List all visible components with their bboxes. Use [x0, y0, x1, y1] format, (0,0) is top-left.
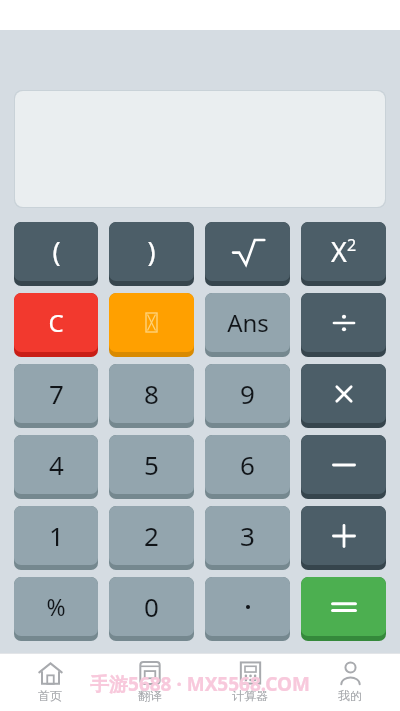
button[interactable]: Profile — [300, 653, 400, 711]
staticText: Ans — [227, 306, 269, 339]
button[interactable]: C — [14, 293, 98, 357]
button[interactable] — [301, 506, 386, 570]
button[interactable]: ) — [109, 222, 194, 286]
staticText: 4 — [49, 447, 64, 482]
staticText: 7 — [49, 376, 64, 411]
button[interactable] — [205, 577, 290, 641]
staticText: C — [48, 306, 64, 339]
button[interactable] — [301, 435, 386, 499]
button[interactable]: % — [14, 577, 98, 641]
button[interactable]: Home — [0, 653, 100, 711]
staticText: 手游5688 · MX5568.COM — [90, 671, 310, 697]
staticText: 1 — [49, 518, 64, 553]
staticText: 6 — [240, 447, 255, 482]
button[interactable]: Ans — [205, 293, 290, 357]
staticText: 首页 — [38, 688, 62, 703]
button[interactable]: 9 — [205, 364, 290, 428]
button[interactable] — [109, 293, 194, 357]
staticText: 我的 — [338, 688, 362, 703]
button[interactable]: ( — [14, 222, 98, 286]
button[interactable] — [205, 222, 290, 286]
button[interactable]: 4 — [14, 435, 98, 499]
button[interactable] — [301, 293, 386, 357]
staticText: ( — [52, 233, 61, 270]
staticText: 0 — [144, 589, 159, 624]
staticText: 9 — [240, 376, 255, 411]
staticText: ) — [147, 233, 156, 270]
button[interactable]: 1 — [14, 506, 98, 570]
staticText: 5 — [144, 447, 159, 482]
button[interactable]: Translate — [100, 653, 200, 711]
staticText: % — [46, 591, 66, 622]
button[interactable]: Calculator — [200, 653, 300, 711]
staticText: 2 — [144, 518, 159, 553]
staticText: X — [331, 233, 347, 270]
button[interactable]: 6 — [205, 435, 290, 499]
button[interactable]: 3 — [205, 506, 290, 570]
button[interactable]: 8 — [109, 364, 194, 428]
button[interactable]: X — [301, 222, 386, 286]
staticText: 8 — [144, 376, 159, 411]
button[interactable]: 7 — [14, 364, 98, 428]
button[interactable]: 0 — [109, 577, 194, 641]
button[interactable]: 2 — [109, 506, 194, 570]
staticText: 3 — [240, 518, 255, 553]
staticText: 2 — [347, 234, 357, 256]
button[interactable] — [301, 364, 386, 428]
staticText: 翻译 — [138, 688, 162, 703]
button[interactable]: 5 — [109, 435, 194, 499]
staticText: 计算器 — [232, 688, 268, 703]
button[interactable] — [301, 577, 386, 641]
